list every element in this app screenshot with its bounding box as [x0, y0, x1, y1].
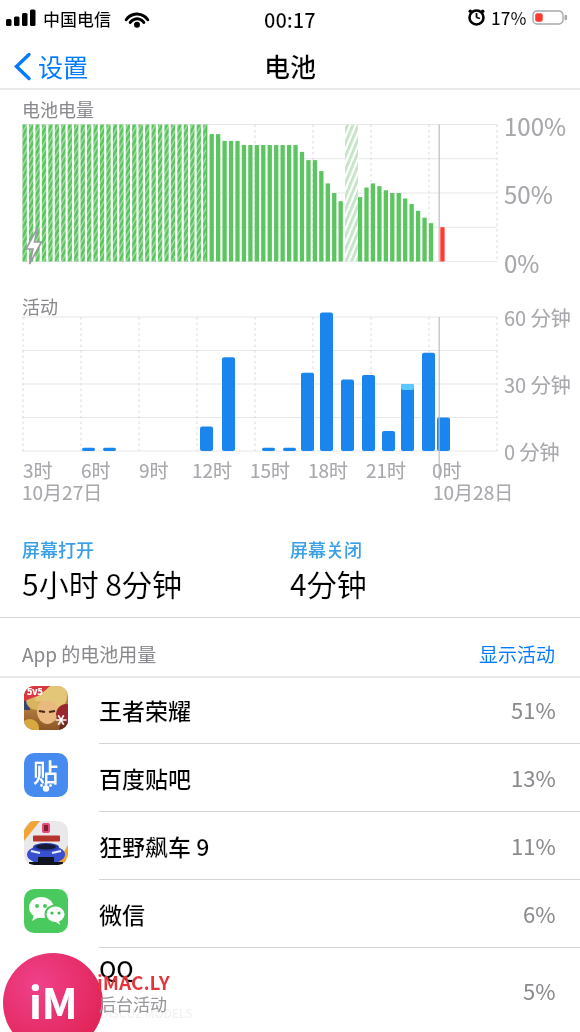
- staticText: 00:17: [264, 5, 316, 34]
- staticText: 狂野飙车 9: [99, 829, 210, 862]
- staticText: 50%: [504, 176, 553, 211]
- staticText: 9时: [139, 456, 169, 484]
- staticText: 11%: [511, 829, 556, 861]
- staticText: 设置: [38, 48, 89, 84]
- staticText: 51%: [511, 693, 556, 725]
- staticText: 30 分钟: [504, 370, 571, 399]
- staticText: 10月27日: [22, 478, 103, 506]
- staticText: 5v5: [27, 685, 43, 698]
- staticText: 电池电量: [22, 96, 94, 122]
- staticText: 5小时 8分钟: [22, 561, 183, 604]
- staticText: 13%: [511, 761, 556, 793]
- staticText: 微信: [99, 897, 145, 930]
- staticText: 屏幕关闭: [290, 536, 362, 562]
- staticText: 12时: [192, 456, 233, 484]
- button[interactable]: [0, 948, 580, 1032]
- staticText: 10月28日: [433, 478, 514, 506]
- staticText: 后台活动: [99, 991, 167, 1016]
- staticText: 0%: [504, 245, 540, 280]
- staticText: iMAC.LY: [97, 968, 170, 996]
- staticText: 6时: [81, 456, 111, 484]
- staticText: 60 分钟: [504, 303, 571, 332]
- staticText: QQ: [99, 951, 134, 984]
- staticText: 100%: [504, 108, 567, 143]
- staticText: 显示活动: [479, 640, 556, 668]
- staticText: 贴: [33, 753, 59, 789]
- staticText: 屏幕打开: [22, 536, 94, 562]
- staticText: 4分钟: [290, 561, 367, 604]
- staticText: 中国电信: [43, 6, 111, 31]
- staticText: 5%: [523, 974, 556, 1006]
- staticText: 15时: [250, 456, 291, 484]
- staticText: iM: [29, 970, 78, 1031]
- staticText: 6%: [523, 897, 556, 929]
- staticText: 百度贴吧: [99, 761, 191, 794]
- staticText: 电池: [264, 47, 317, 85]
- staticText: App 的电池用量: [22, 640, 157, 668]
- staticText: 3时: [23, 456, 53, 484]
- button[interactable]: [0, 811, 580, 879]
- staticText: 活动: [22, 293, 58, 319]
- staticText: 王者荣耀: [99, 693, 191, 726]
- staticText: 18时: [308, 456, 349, 484]
- button[interactable]: [0, 879, 580, 947]
- button[interactable]: [0, 675, 580, 743]
- staticText: 0 分钟: [504, 437, 560, 466]
- staticText: 0时: [432, 456, 462, 484]
- button[interactable]: [0, 743, 580, 811]
- button[interactable]: 显示活动: [430, 636, 556, 672]
- button[interactable]: [8, 48, 92, 84]
- staticText: 21时: [366, 456, 407, 484]
- staticText: 17%: [491, 5, 527, 30]
- staticText: DISCUZ MODELS: [100, 1004, 193, 1021]
